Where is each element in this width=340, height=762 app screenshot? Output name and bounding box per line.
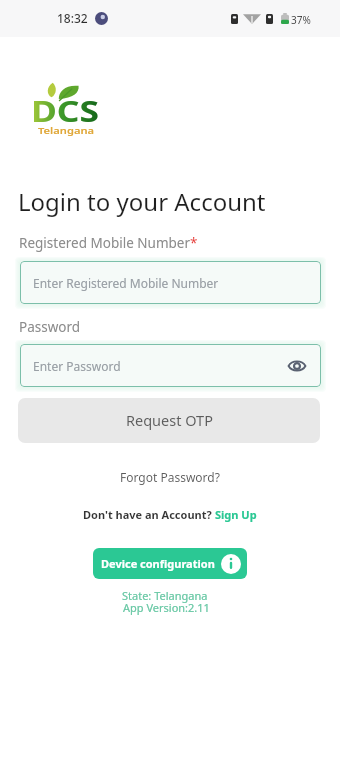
button[interactable]: Enter Registered Mobile Number (20, 261, 321, 304)
staticText: 37% (291, 13, 311, 27)
button[interactable]: Sign Up (215, 507, 257, 522)
staticText: Password (19, 318, 81, 336)
staticText: 18:32 (57, 10, 88, 26)
staticText: Registered Mobile Number* (19, 234, 198, 252)
staticText: Login to your Account (18, 185, 266, 218)
staticText: State: Telangana (122, 588, 208, 603)
staticText: Device configuration (101, 556, 215, 571)
button[interactable]: Request OTP (18, 398, 320, 443)
button[interactable]: Enter Password (20, 344, 321, 387)
staticText: Enter Password (33, 358, 121, 374)
staticText: Don't have an Account? (83, 507, 215, 522)
staticText: Telangana (38, 124, 95, 136)
button[interactable]: Forgot Password? (114, 465, 226, 489)
staticText: DCS (31, 92, 99, 130)
button[interactable]: Show password (285, 354, 309, 378)
staticText: App Version:2.11 (123, 600, 210, 615)
button[interactable]: Device configuration (93, 548, 247, 579)
staticText: Request OTP (126, 410, 213, 430)
staticText: Enter Registered Mobile Number (33, 275, 219, 291)
